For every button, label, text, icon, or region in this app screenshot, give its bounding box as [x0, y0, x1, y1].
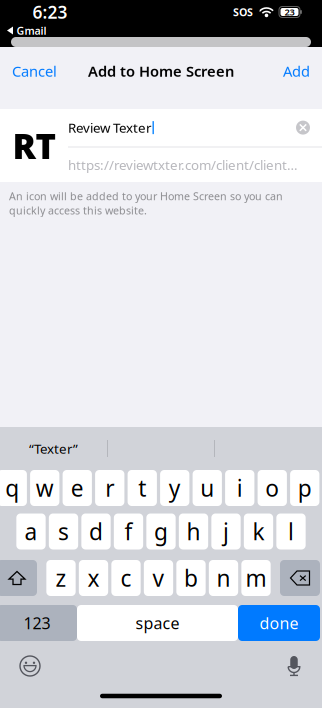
staticText: k	[252, 516, 264, 546]
button[interactable]: s	[49, 513, 78, 549]
button[interactable]: n	[209, 560, 238, 596]
staticText: w	[36, 473, 54, 503]
staticText: b	[184, 563, 198, 593]
button[interactable]: l	[276, 513, 306, 549]
button[interactable]: 123	[0, 605, 77, 641]
button[interactable]: w	[30, 470, 59, 506]
button[interactable]: space	[77, 605, 238, 641]
button[interactable]: done	[238, 605, 320, 641]
staticText: v	[152, 563, 164, 593]
button[interactable]: r	[95, 470, 124, 506]
button[interactable]: Cancel	[0, 51, 69, 91]
button[interactable]: Delete	[280, 560, 320, 596]
staticText: z	[55, 563, 66, 593]
staticText: Cancel	[12, 61, 57, 81]
button[interactable]: e	[63, 470, 92, 506]
button[interactable]: Clear text	[296, 121, 310, 135]
staticText: y	[169, 473, 181, 503]
staticText: https://reviewtxter.com/client/client…	[68, 156, 298, 174]
button[interactable]: j	[211, 513, 241, 549]
button[interactable]: a	[16, 513, 46, 549]
staticText: space	[135, 612, 179, 634]
staticText: done	[259, 612, 298, 634]
staticText: n	[216, 563, 230, 593]
button[interactable]: Dictation	[282, 651, 306, 681]
staticText: o	[265, 473, 279, 503]
staticText: 23	[284, 6, 294, 18]
staticText: u	[200, 473, 214, 503]
button[interactable]: o	[258, 470, 287, 506]
staticText: SOS	[233, 5, 253, 19]
button[interactable]: x	[79, 560, 108, 596]
staticText: h	[186, 516, 200, 546]
staticText: d	[89, 516, 103, 546]
button[interactable]: f	[114, 513, 143, 549]
button[interactable]: m	[241, 560, 271, 596]
staticText: e	[71, 473, 84, 503]
button[interactable]: i	[225, 470, 254, 506]
button[interactable]: “Texter”	[0, 429, 107, 467]
button[interactable]: z	[46, 560, 76, 596]
staticText: “Texter”	[29, 440, 78, 457]
staticText: m	[245, 563, 266, 593]
staticText: An icon will be added to your Home Scree…	[9, 189, 283, 217]
button[interactable]: t	[128, 470, 157, 506]
staticText: Gmail	[16, 23, 46, 38]
staticText: a	[24, 516, 37, 546]
button[interactable]: v	[144, 560, 173, 596]
staticText: r	[105, 473, 114, 503]
staticText: s	[58, 516, 69, 546]
button[interactable]: Shift	[0, 560, 37, 596]
button[interactable]: y	[160, 470, 189, 506]
button[interactable]: g	[146, 513, 176, 549]
staticText: q	[5, 473, 19, 503]
button[interactable]: h	[179, 513, 208, 549]
staticText: t	[138, 473, 146, 503]
button[interactable]: b	[176, 560, 206, 596]
button[interactable]: c	[111, 560, 141, 596]
staticText: 6:23	[32, 0, 67, 23]
staticText: c	[120, 563, 131, 593]
staticText: Add	[283, 61, 310, 81]
button[interactable]: Emoji	[16, 652, 44, 680]
button[interactable]: q	[0, 470, 27, 506]
staticText: j	[223, 516, 229, 546]
staticText: x	[87, 563, 99, 593]
staticText: i	[237, 473, 243, 503]
button[interactable]: u	[193, 470, 222, 506]
button[interactable]: d	[81, 513, 111, 549]
staticText: 123	[23, 612, 50, 634]
staticText: l	[288, 516, 294, 546]
button[interactable]: Add	[271, 51, 322, 91]
button[interactable]: k	[244, 513, 273, 549]
staticText: f	[124, 516, 132, 546]
staticText: p	[298, 473, 312, 503]
button[interactable]: p	[290, 470, 319, 506]
staticText: Add to Home Screen	[88, 61, 234, 81]
staticText: g	[154, 516, 168, 546]
staticText: RT	[12, 122, 55, 168]
staticText: Review Texter	[68, 119, 152, 136]
